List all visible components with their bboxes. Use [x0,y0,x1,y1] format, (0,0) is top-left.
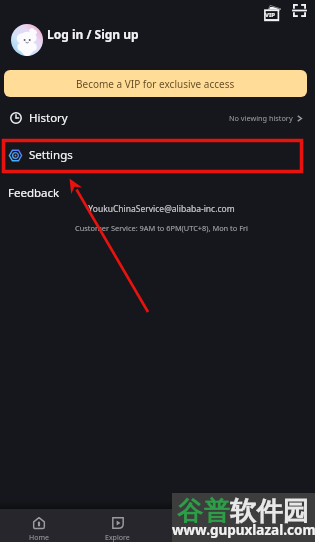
staticText: VIP [265,11,275,19]
button[interactable]: Feedback [0,177,315,209]
staticText: Become a VIP for exclusive access [76,77,235,91]
staticText: Feedback [8,185,60,201]
button[interactable]: Explore [78,509,157,542]
button[interactable]: Log in / Sign up [0,18,315,50]
button[interactable]: Scan [286,0,312,23]
staticText: No viewing history [229,113,293,123]
staticText: Customer Service: 9AM to 6PM(UTC+8), Mon… [75,223,248,233]
staticText: YoukuChinaService@alibaba-inc.com [88,203,235,215]
button[interactable]: VIP [259,1,285,27]
button[interactable]: Home [0,509,78,542]
staticText: 谷普 [177,495,230,528]
button[interactable]: Settings [0,139,315,171]
staticText: Explore [105,533,130,542]
button[interactable]: History [0,102,315,134]
staticText: 软件园 [230,495,310,528]
staticText: www.gupuxlazal.com [172,521,315,539]
staticText: Home [29,533,49,542]
staticText: History [29,110,68,126]
staticText: Log in / Sign up [47,26,139,42]
staticText: Settings [29,147,73,163]
button[interactable]: Become a VIP for exclusive access [4,70,307,97]
